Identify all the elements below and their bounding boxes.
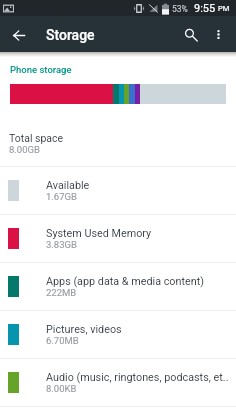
staticText: Total space <box>9 132 64 144</box>
staticText: Pictures, videos <box>46 323 122 336</box>
button[interactable]: Navigate up <box>5 20 33 48</box>
staticText: 6.70MB <box>46 335 79 346</box>
staticText: 8.00GB <box>9 144 40 155</box>
staticText: System Used Memory <box>46 227 152 240</box>
staticText: 53% <box>172 4 188 14</box>
staticText: Audio (music, ringtones, podcasts, et.. <box>46 371 229 384</box>
staticText: 222MB <box>46 287 77 298</box>
button[interactable]: Pictures, videos <box>0 311 236 358</box>
button[interactable]: Audio (music, ringtones, podcasts, et.. <box>0 359 236 406</box>
button[interactable]: System Used Memory <box>0 215 236 262</box>
button[interactable]: Apps (app data & media content) <box>0 263 236 310</box>
staticText: Storage <box>46 27 95 43</box>
staticText: Available <box>46 179 90 192</box>
button[interactable]: Available <box>0 167 236 214</box>
button[interactable]: Search <box>176 20 204 48</box>
staticText: 1.67GB <box>46 191 77 202</box>
button[interactable]: More options <box>204 20 232 48</box>
staticText: Apps (app data & media content) <box>46 275 204 288</box>
staticText: PM <box>218 4 230 13</box>
staticText: 3.83GB <box>46 239 77 250</box>
staticText: Phone storage <box>10 64 72 75</box>
staticText: 8.00KB <box>46 383 77 394</box>
staticText: 9:55 <box>194 2 216 15</box>
